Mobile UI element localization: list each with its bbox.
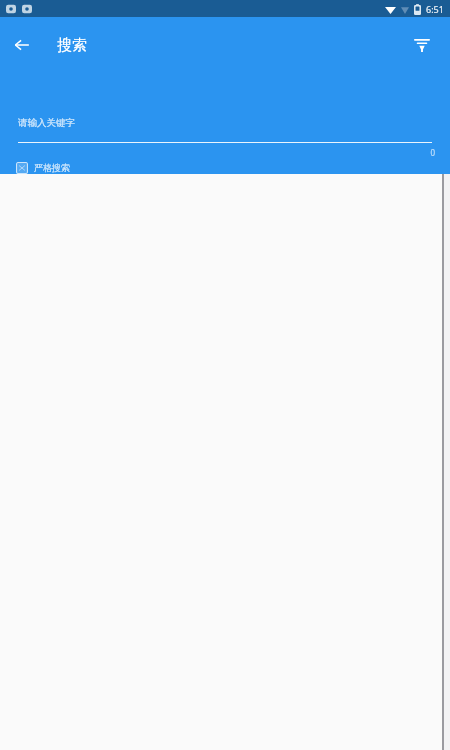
staticText: 0 (430, 147, 435, 158)
button[interactable]: 请输入关键字 (18, 117, 432, 143)
button[interactable]: Filter (400, 23, 444, 67)
staticText: 搜索 (57, 36, 87, 55)
button[interactable]: Strict search checkbox (16, 161, 70, 174)
staticText: 6:51 (426, 3, 444, 15)
button[interactable]: Back (0, 23, 44, 67)
staticText: 严格搜索 (34, 162, 70, 173)
other: Strict search checkbox (16, 162, 28, 174)
staticText: 请输入关键字 (18, 117, 75, 129)
